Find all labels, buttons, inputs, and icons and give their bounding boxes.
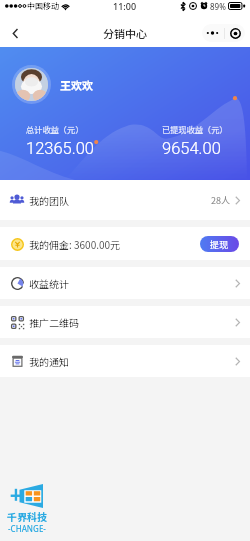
staticText: 已提现收益（元） [162,123,228,135]
staticText: 28人 [211,194,230,207]
staticText: 89% [210,1,226,12]
staticText: 推广二维码 [29,315,79,329]
staticText: 总计收益（元） [26,123,84,135]
staticText: 11:00 [113,0,137,12]
button[interactable]: 我的通知 [0,345,250,377]
staticText: 我的佣金: 3600.00元 [29,237,121,251]
button[interactable]: 返回 [4,22,26,44]
staticText: 我的团队 [29,193,69,207]
staticText: 提现 [210,238,229,251]
staticText: 中国移动 [27,0,59,12]
staticText: 王欢欢 [60,77,93,93]
staticText: -CHANGE- [8,523,46,534]
staticText: 分销中心 [103,25,147,41]
button[interactable]: 更多 [202,24,245,42]
button[interactable]: 我的团队 [0,180,250,220]
button[interactable]: 提现 [200,236,239,252]
button[interactable]: 收益统计 [0,267,250,299]
staticText: 我的通知 [29,354,69,368]
button[interactable]: 推广二维码 [0,306,250,338]
staticText: 9654.00 [162,139,221,158]
staticText: 收益统计 [29,276,69,290]
staticText: 12365.00 [26,139,95,158]
staticText: 千界科技 [7,509,47,523]
